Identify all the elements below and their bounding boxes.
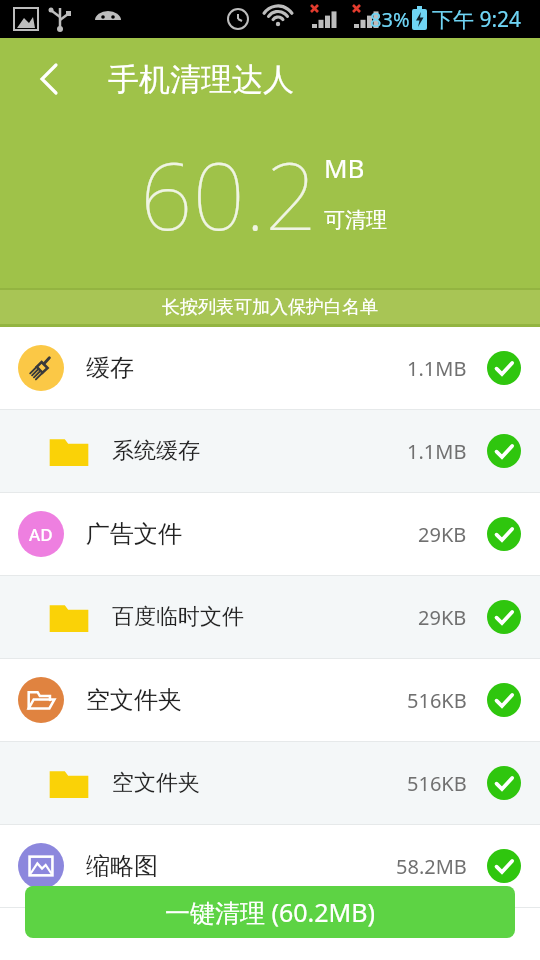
button[interactable]: Selected, toggle 缩略图 [487, 849, 521, 883]
button[interactable]: Selected, toggle 系统缓存 [487, 434, 521, 468]
button[interactable]: Selected, toggle 百度临时文件 [487, 600, 521, 634]
button[interactable]: 缓存 [0, 327, 540, 409]
button[interactable]: 空文件夹 [0, 659, 540, 741]
staticText: 百度临时文件 [112, 603, 244, 631]
staticText: 1.1MB [407, 438, 467, 465]
button[interactable]: 一键清理 (60.2MB) [25, 886, 515, 938]
staticText: 83% [370, 6, 410, 33]
button[interactable]: Selected, toggle 空文件夹 [487, 683, 521, 717]
staticText: 可清理 [324, 207, 387, 233]
button[interactable]: 系统缓存 [0, 410, 540, 492]
staticText: 长按列表可加入保护白名单 [162, 296, 378, 319]
button[interactable]: 百度临时文件 [0, 576, 540, 658]
staticText: 1.1MB [407, 355, 467, 382]
staticText: 516KB [407, 770, 467, 797]
button[interactable]: Selected, toggle 空文件夹 [487, 766, 521, 800]
staticText: 空文件夹 [86, 685, 182, 715]
button[interactable]: Back [18, 48, 80, 110]
staticText: 60.2 [140, 132, 318, 257]
staticText: 58.2MB [396, 853, 467, 880]
button[interactable]: Selected, toggle 缓存 [487, 351, 521, 385]
staticText: 29KB [418, 604, 467, 631]
staticText: 系统缓存 [112, 437, 200, 465]
button[interactable]: 空文件夹 [0, 742, 540, 824]
button[interactable]: Selected, toggle 广告文件 [487, 517, 521, 551]
staticText: 缩略图 [86, 851, 158, 881]
staticText: 一键清理 (60.2MB) [165, 895, 376, 929]
button[interactable]: AD [0, 493, 540, 575]
staticText: 516KB [407, 687, 467, 714]
button[interactable]: 缩略图 [0, 825, 540, 907]
staticText: 缓存 [86, 353, 134, 383]
staticText: 广告文件 [86, 519, 182, 549]
staticText: 下午 9:24 [432, 5, 522, 34]
staticText: MB [324, 150, 365, 185]
staticText: 手机清理达人 [108, 60, 294, 99]
staticText: AD [29, 523, 53, 546]
staticText: 29KB [418, 521, 467, 548]
staticText: 空文件夹 [112, 769, 200, 797]
